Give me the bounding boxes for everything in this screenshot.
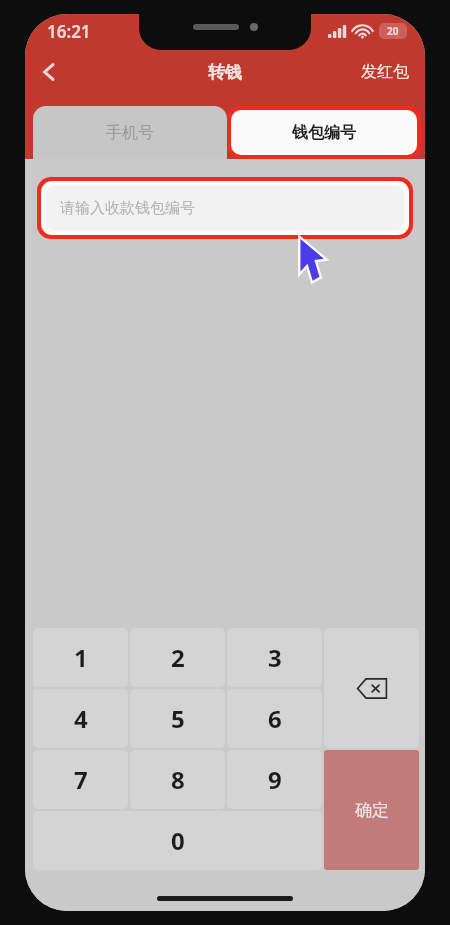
staticText: 转钱 [208, 62, 242, 83]
staticText: 3 [268, 641, 282, 674]
staticText: 2 [171, 641, 185, 674]
staticText: 1 [74, 641, 88, 674]
staticText: 确定 [355, 800, 389, 821]
button[interactable]: 0 [33, 811, 322, 870]
button[interactable]: 2 [130, 628, 225, 687]
button[interactable]: Delete [324, 628, 419, 748]
button[interactable]: 确定 [324, 750, 419, 870]
staticText: 钱包编号 [292, 123, 356, 143]
button[interactable]: 钱包编号 [231, 110, 417, 155]
button[interactable]: 发红包 [345, 52, 425, 92]
button[interactable]: 1 [33, 628, 128, 687]
button[interactable]: 请输入收款钱包编号 [46, 186, 404, 230]
button[interactable]: 9 [227, 750, 322, 809]
button[interactable]: 7 [33, 750, 128, 809]
staticText: 16:21 [47, 20, 91, 43]
staticText: 发红包 [361, 62, 409, 82]
staticText: 8 [171, 763, 185, 796]
button[interactable]: 8 [130, 750, 225, 809]
staticText: 7 [74, 763, 88, 796]
staticText: 0 [171, 824, 185, 857]
staticText: 4 [74, 702, 88, 735]
button[interactable]: 4 [33, 689, 128, 748]
staticText: 手机号 [106, 123, 154, 143]
button[interactable]: 手机号 [33, 106, 227, 159]
staticText: 9 [268, 763, 282, 796]
staticText: 5 [171, 702, 185, 735]
button[interactable]: 6 [227, 689, 322, 748]
staticText: 请输入收款钱包编号 [60, 199, 195, 218]
staticText: 20 [387, 24, 399, 38]
staticText: 6 [268, 702, 282, 735]
button[interactable]: 5 [130, 689, 225, 748]
button[interactable]: 3 [227, 628, 322, 687]
button[interactable]: Back [25, 48, 73, 96]
